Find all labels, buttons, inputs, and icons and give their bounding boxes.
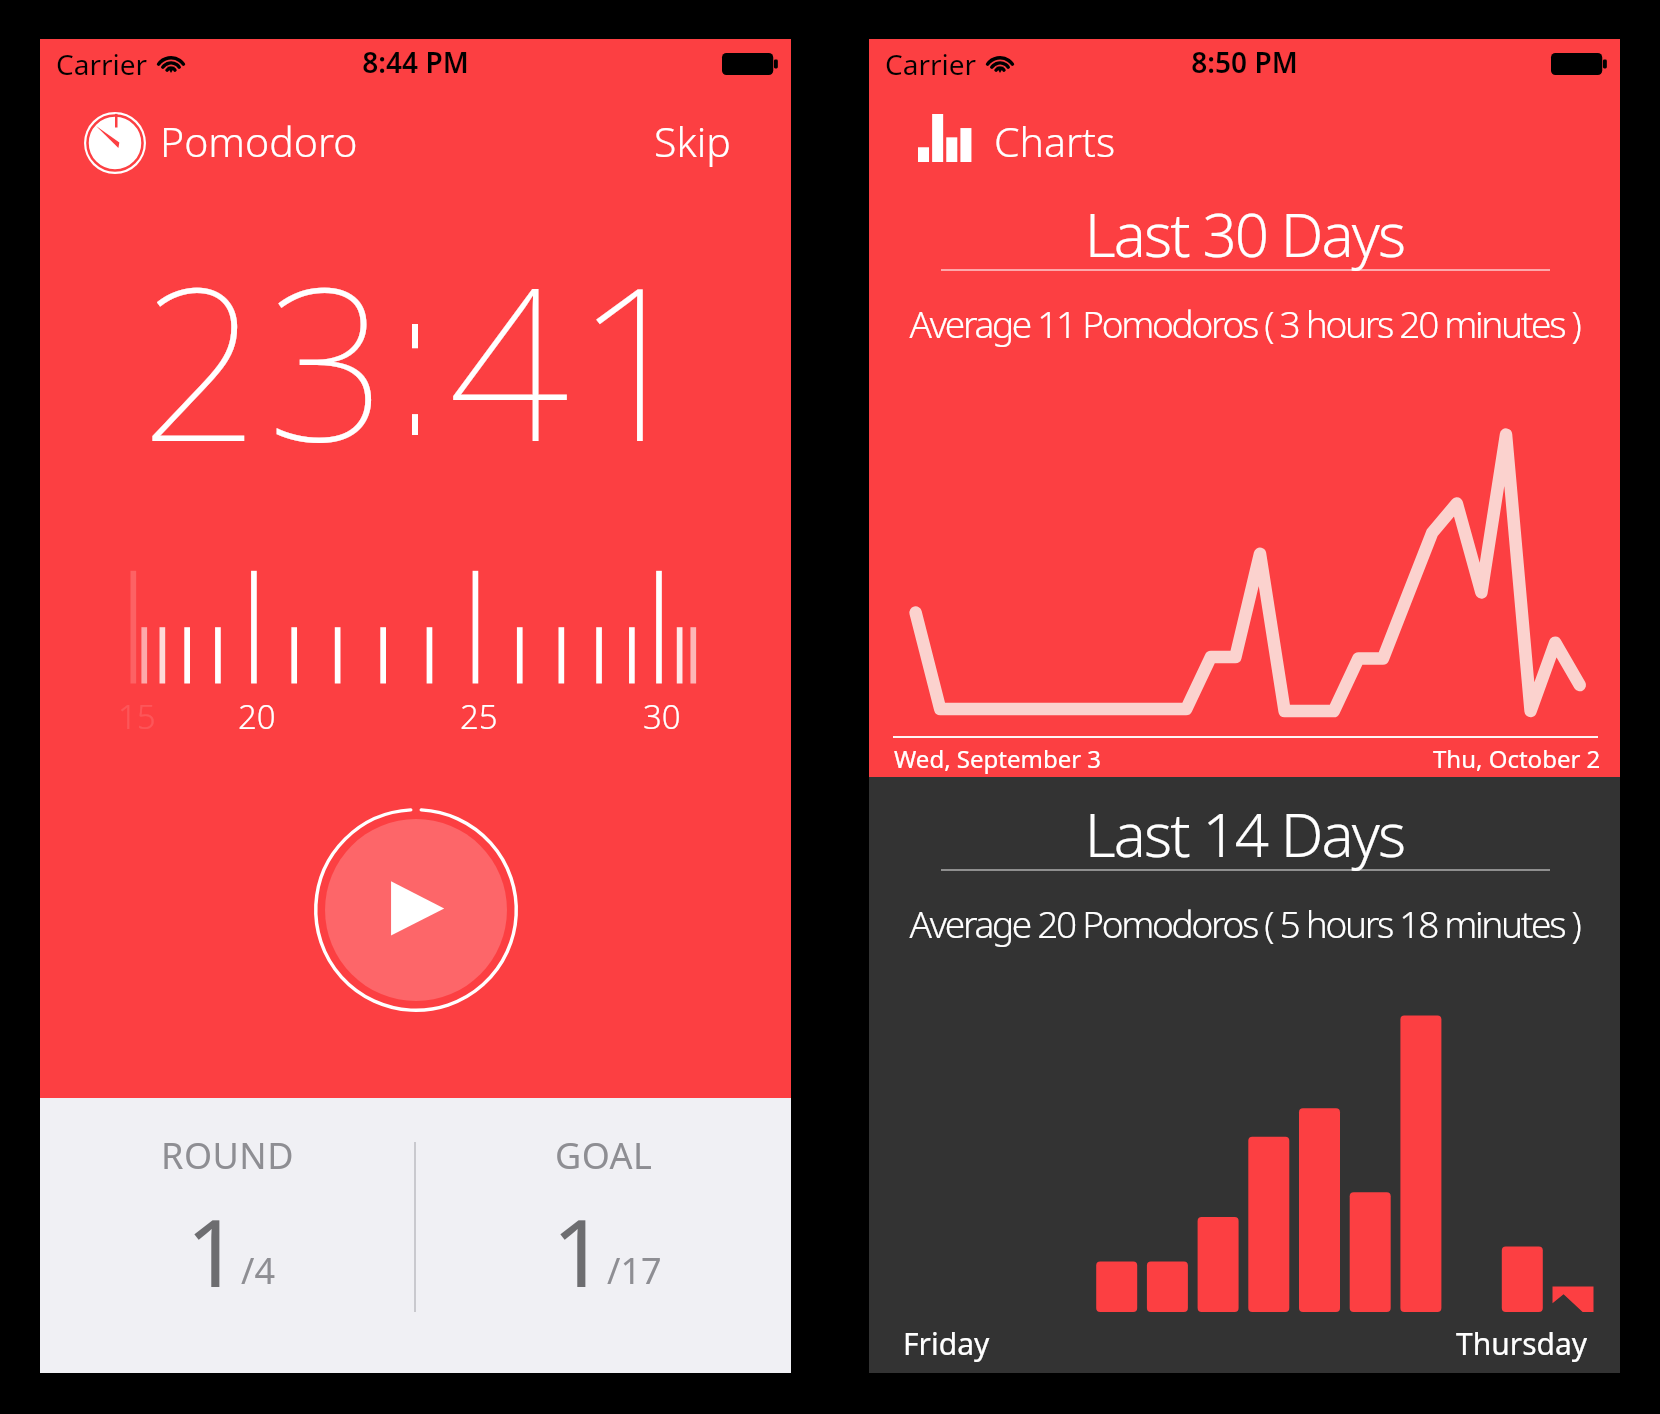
staticText: 23 — [140, 214, 394, 503]
staticText: /4 — [241, 1246, 275, 1295]
staticText: Thursday — [1456, 1323, 1588, 1364]
button[interactable]: Charts — [918, 105, 1116, 181]
staticText: 8:50 PM — [869, 43, 1620, 81]
staticText: Friday — [903, 1323, 990, 1364]
button[interactable]: ROUND — [40, 1098, 414, 1373]
staticText: ROUND — [161, 1131, 294, 1180]
staticText: Average 11 Pomodoros ( 3 hours 20 minute… — [869, 298, 1620, 348]
staticText: 30 — [643, 694, 681, 739]
staticText: Carrier — [56, 45, 148, 83]
staticText: 20 — [238, 694, 276, 739]
button[interactable]: Skip — [654, 115, 731, 171]
staticText: 15 — [118, 694, 156, 739]
staticText: 25 — [460, 694, 498, 739]
staticText: Last 30 Days — [869, 193, 1620, 275]
button[interactable]: GOAL — [416, 1098, 791, 1373]
staticText: Pomodoro — [160, 113, 358, 169]
staticText: 8:44 PM — [40, 43, 791, 81]
staticText: 1 — [186, 1187, 240, 1315]
staticText: Charts — [994, 113, 1116, 169]
staticText: Thu, October 2 — [1433, 742, 1601, 775]
staticText: 1 — [552, 1187, 606, 1315]
staticText: /17 — [607, 1246, 662, 1295]
staticText: Last 14 Days — [869, 793, 1620, 875]
staticText: 41 — [448, 214, 702, 503]
button[interactable]: Pomodoro — [84, 112, 358, 174]
staticText: Average 20 Pomodoros ( 5 hours 18 minute… — [869, 898, 1620, 948]
staticText: Carrier — [885, 45, 977, 83]
staticText: GOAL — [555, 1131, 653, 1180]
staticText: Skip — [654, 113, 731, 169]
button[interactable]: Start timer — [314, 808, 518, 1012]
staticText: Wed, September 3 — [894, 742, 1102, 775]
